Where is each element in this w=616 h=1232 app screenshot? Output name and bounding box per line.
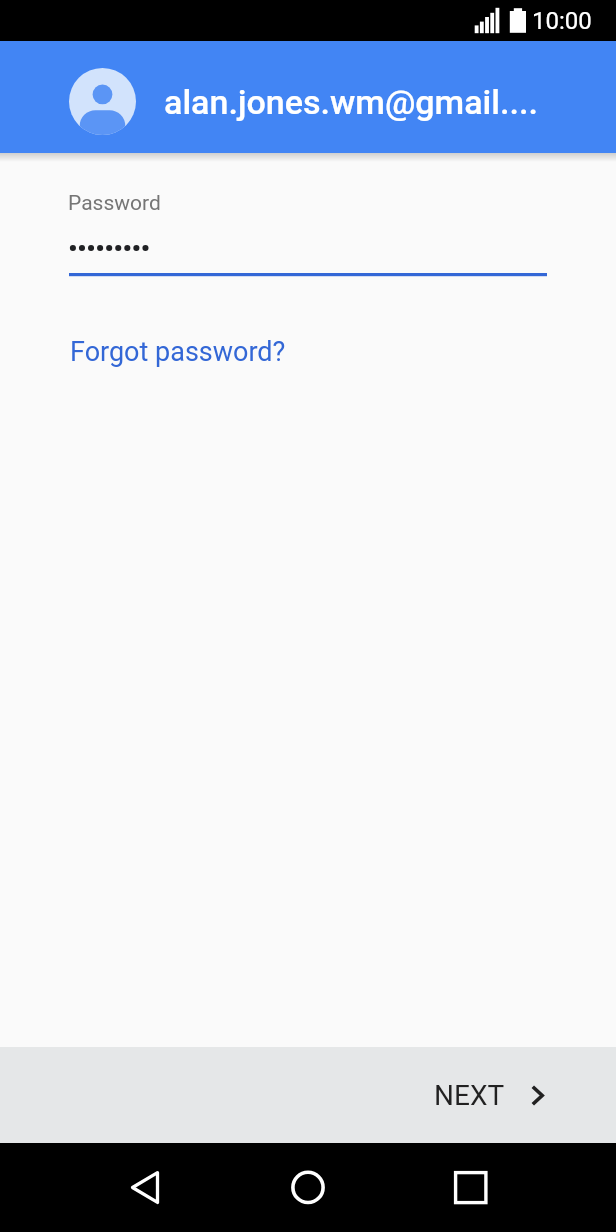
- staticText: NEXT: [434, 1079, 505, 1112]
- button[interactable]: NEXT: [412, 1063, 562, 1128]
- button[interactable]: Forgot password?: [60, 328, 296, 376]
- button[interactable]: Home: [280, 1165, 336, 1221]
- staticText: 10:00: [532, 7, 592, 35]
- button[interactable]: Password: [60, 181, 556, 281]
- button[interactable]: Recent apps: [443, 1165, 499, 1221]
- staticText: Password: [68, 191, 161, 216]
- button[interactable]: Account avatar: [0, 41, 616, 153]
- button[interactable]: Back: [117, 1165, 173, 1221]
- staticText: alan.jones.wm@gmail....: [164, 82, 538, 122]
- other: Account avatar: [69, 68, 136, 135]
- staticText: Forgot password?: [70, 336, 286, 368]
